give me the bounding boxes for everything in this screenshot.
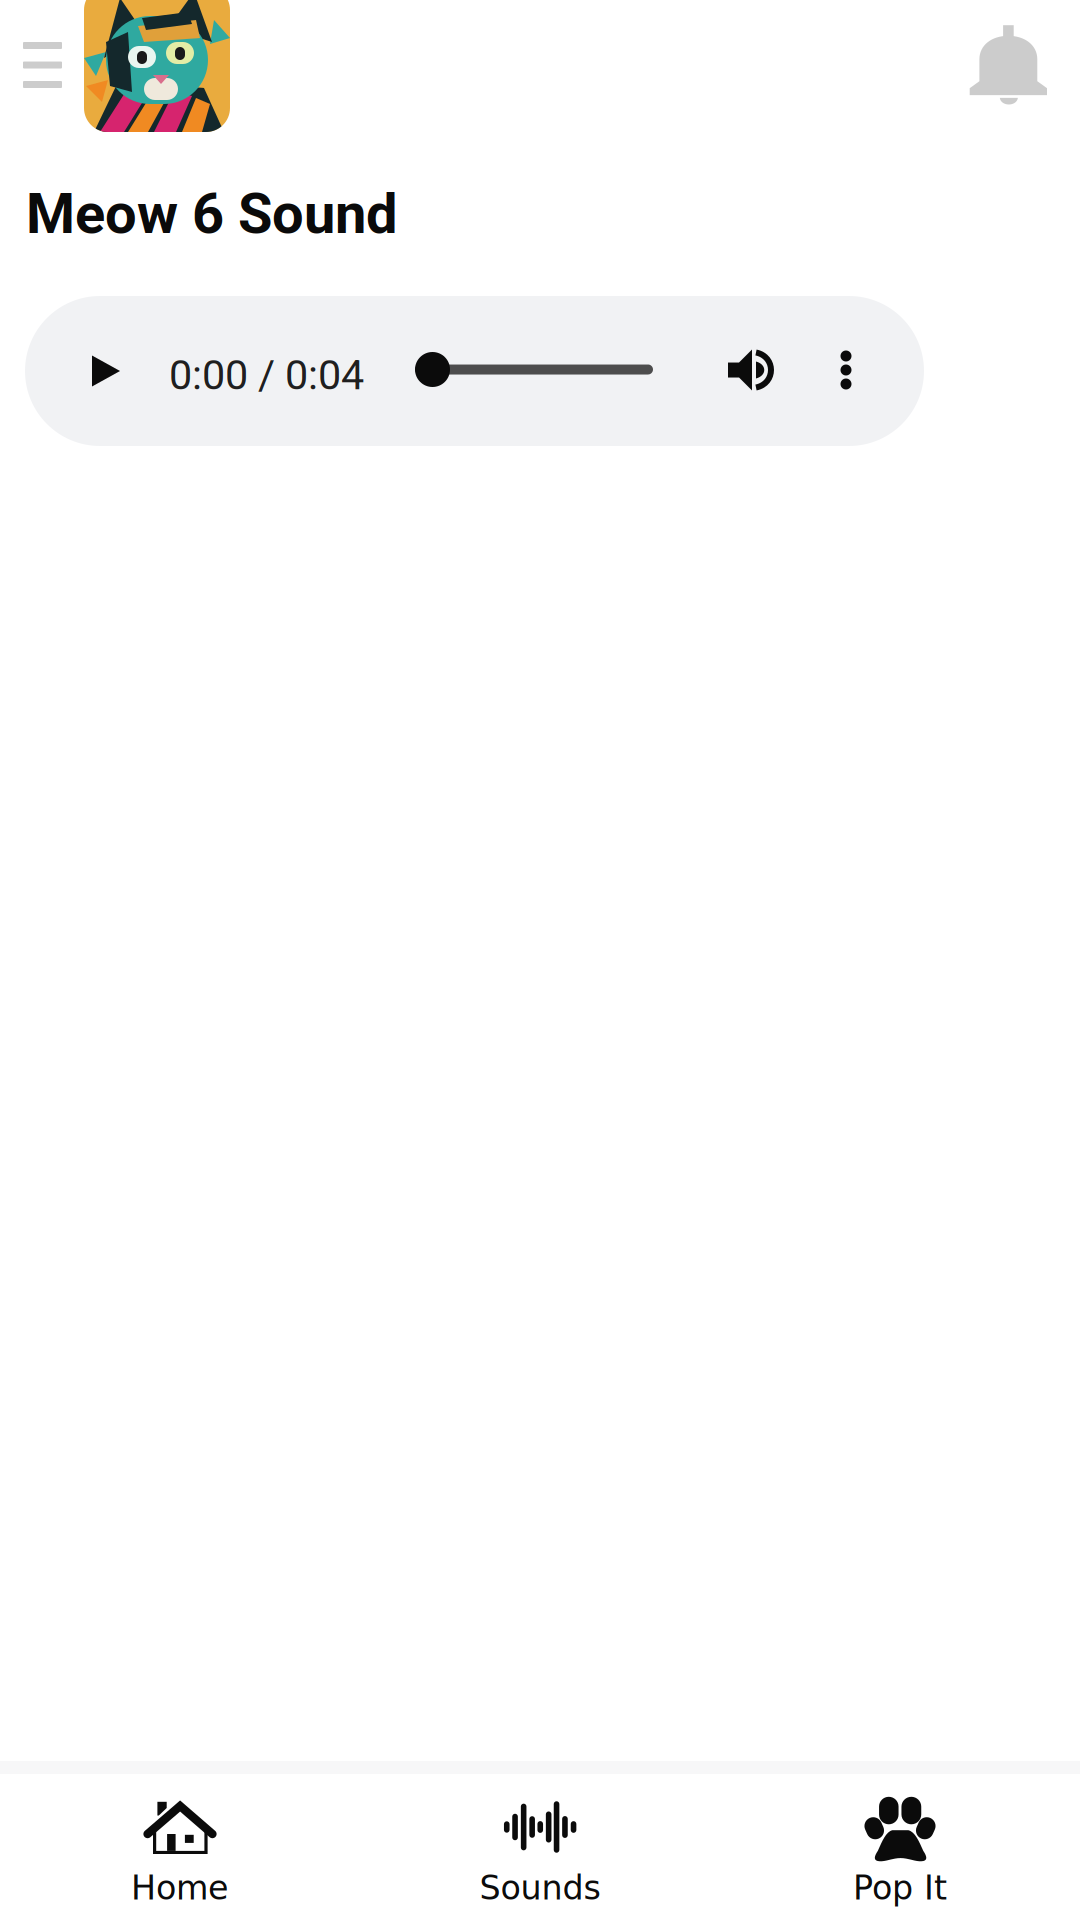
button[interactable]: Play	[73, 338, 139, 404]
staticText: Meow 6 Sound	[26, 181, 398, 247]
button[interactable]: Menu	[15, 35, 93, 119]
button[interactable]: Mute	[716, 335, 786, 405]
staticText: Sounds	[479, 1869, 600, 1907]
button[interactable]: Home	[0, 1774, 360, 1920]
button[interactable]: Notifications	[946, 0, 1070, 124]
button[interactable]: Pop It	[720, 1774, 1080, 1920]
button[interactable]: More options	[816, 340, 876, 400]
staticText: 0:00 / 0:04	[169, 351, 364, 399]
staticText: Pop It	[853, 1869, 947, 1907]
staticText: Home	[131, 1869, 229, 1907]
button[interactable]: Sounds	[360, 1774, 720, 1920]
